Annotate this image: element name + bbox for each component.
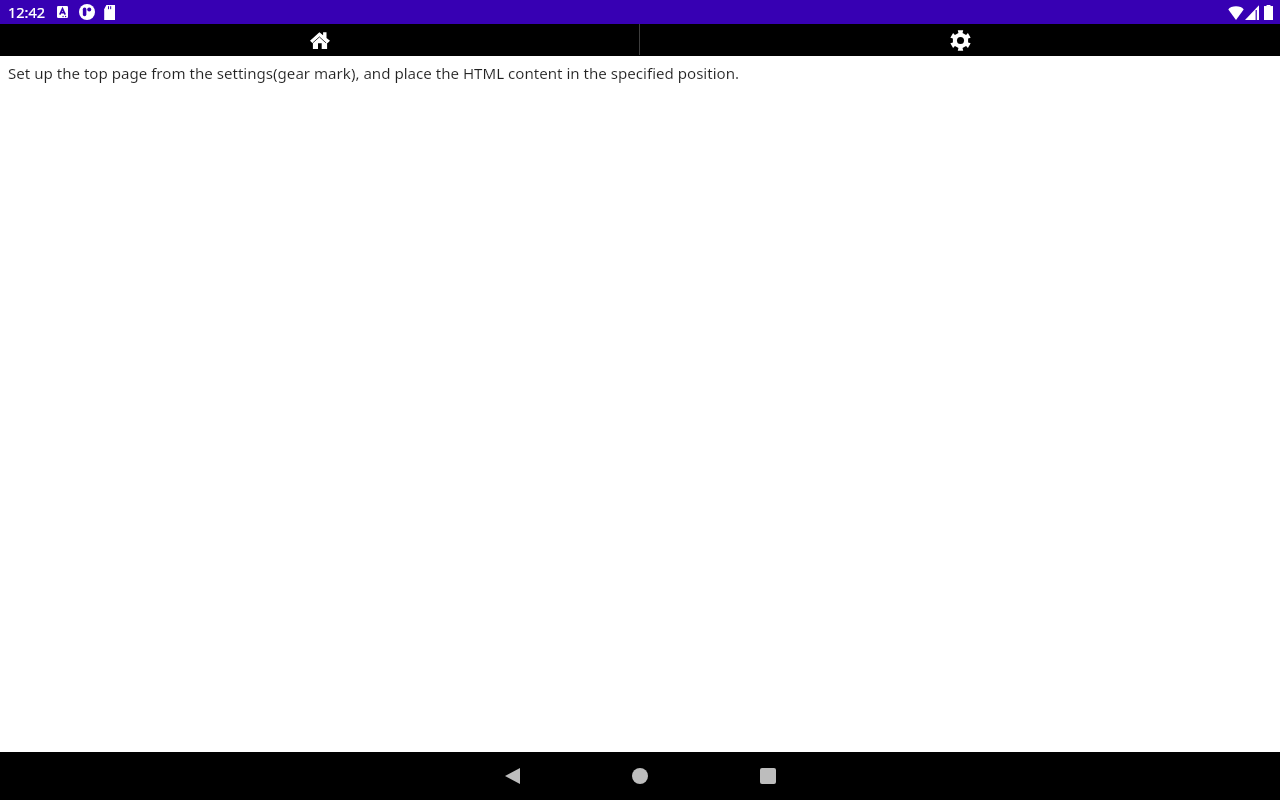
button[interactable]: Back — [448, 752, 576, 800]
staticText: 12:42 — [8, 2, 46, 22]
button[interactable]: Settings — [640, 24, 1280, 56]
button[interactable]: Home — [576, 752, 704, 800]
staticText: Set up the top page from the settings(ge… — [8, 63, 740, 84]
button[interactable]: Home — [0, 24, 640, 56]
button[interactable]: Recent apps — [704, 752, 832, 800]
